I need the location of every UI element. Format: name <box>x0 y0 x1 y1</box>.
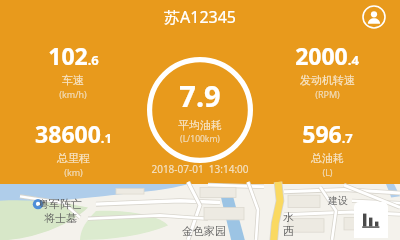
staticText: (RPM) <box>315 88 340 100</box>
staticText: (km) <box>64 166 83 178</box>
staticText: 2018-07-01 13:14:00 <box>151 162 249 176</box>
staticText: 苏A12345 <box>164 6 236 28</box>
button[interactable]: 粤军阵亡 <box>0 184 400 240</box>
staticText: 38600.1 <box>35 118 112 149</box>
staticText: (km/h) <box>59 88 87 100</box>
staticText: 7.9 <box>179 76 221 115</box>
button[interactable]: 596.7 <box>272 118 382 178</box>
staticText: (L/100km) <box>180 133 220 145</box>
staticText: 车速 <box>62 73 84 87</box>
staticText: 总里程 <box>57 151 90 165</box>
button[interactable]: 2000.4 <box>272 40 382 100</box>
staticText: 水 <box>283 210 294 224</box>
staticText: 建设 <box>328 194 348 207</box>
button[interactable]: Statistics <box>354 202 388 238</box>
staticText: 将士墓 <box>44 211 77 225</box>
button[interactable]: 38600.1 <box>18 118 128 178</box>
staticText: 粤军阵亡 <box>38 197 82 211</box>
staticText: 西 <box>283 224 294 238</box>
button[interactable]: 102.6 <box>18 40 128 100</box>
staticText: 总油耗 <box>311 151 344 165</box>
staticText: (L) <box>322 166 333 178</box>
staticText: 发动机转速 <box>300 73 355 87</box>
staticText: 平均油耗 <box>178 118 222 132</box>
staticText: 596.7 <box>302 118 353 149</box>
button[interactable]: 7.9 <box>147 57 253 163</box>
button[interactable]: Profile <box>360 3 388 31</box>
staticText: 2000.4 <box>295 40 359 71</box>
staticText: 金色家园 <box>182 224 226 238</box>
staticText: 102.6 <box>48 40 99 71</box>
